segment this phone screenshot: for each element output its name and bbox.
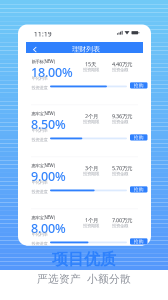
staticText: 理财列表 (72, 45, 100, 54)
staticText: 惠车宝(NEW) (31, 162, 54, 168)
button[interactable]: 抢购 (130, 82, 147, 88)
staticText: 年化利率 (31, 179, 47, 185)
staticText: 新手标(NEW) (31, 58, 54, 64)
staticText: 投资进度 (31, 241, 47, 246)
staticText: 3个月 (85, 164, 98, 172)
staticText: 投资金额 (112, 67, 128, 72)
staticText: 2个月 (85, 112, 98, 120)
staticText: 抢购 (134, 82, 144, 88)
staticText: 年化利率 (31, 231, 47, 237)
staticText: 投资期限 (83, 67, 99, 72)
staticText: 抢购 (134, 186, 144, 192)
staticText: 9.36万元 (112, 112, 132, 120)
staticText: 7.00万元 (112, 216, 132, 224)
staticText: 投资进度 (31, 137, 47, 142)
button[interactable]: Back (31, 45, 38, 54)
staticText: 年化利率 (31, 75, 47, 81)
staticText: 投资进度 (31, 189, 47, 194)
staticText: 投资金额 (112, 171, 128, 176)
staticText: 抢购 (134, 134, 144, 140)
staticText: 1个月 (85, 216, 98, 224)
staticText: 投资金额 (112, 223, 128, 228)
staticText: 投资进度 (31, 85, 47, 90)
staticText: 18.00% (31, 64, 73, 81)
staticText: 8.00% (31, 220, 66, 237)
staticText: 抢购 (134, 238, 144, 244)
staticText: 11:19 (34, 30, 52, 38)
staticText: 项目优质 (52, 249, 116, 269)
staticText: 15天 (85, 60, 96, 68)
staticText: 投资期限 (83, 223, 99, 228)
staticText: 9.00% (31, 168, 66, 185)
staticText: 4.40万元 (112, 60, 132, 68)
staticText: 年化利率 (31, 127, 47, 133)
staticText: 严选资产 小额分散 (37, 272, 131, 286)
staticText: 8.50% (31, 116, 66, 133)
staticText: 投资金额 (112, 119, 128, 124)
button[interactable]: 抢购 (130, 134, 147, 140)
staticText: 5.70万元 (112, 164, 132, 172)
staticText: 投资期限 (83, 171, 99, 176)
button[interactable]: 抢购 (130, 238, 147, 244)
staticText: 惠车宝(NEW) (31, 110, 54, 116)
staticText: 惠车宝(NEW) (31, 214, 54, 220)
button[interactable]: 抢购 (130, 186, 147, 192)
staticText: 投资期限 (83, 119, 99, 124)
